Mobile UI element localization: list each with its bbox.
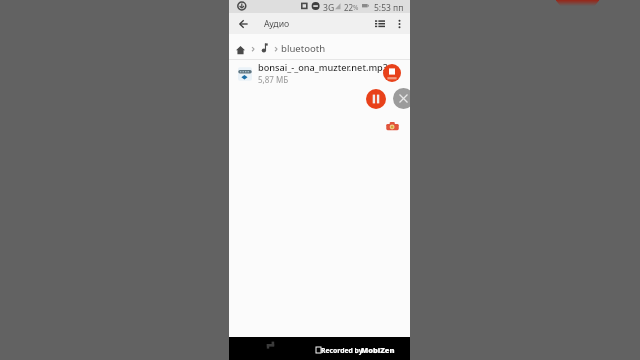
- button[interactable]: bluetooth: [281, 42, 326, 55]
- staticText: bonsai_-_ona_muzter.net.mp3: [258, 61, 389, 74]
- button[interactable]: Change view: [369, 13, 390, 34]
- staticText: 5:53 пп: [374, 2, 404, 14]
- button[interactable]: More options: [389, 13, 410, 34]
- staticText: bluetooth: [281, 42, 326, 55]
- staticText: 3G: [323, 2, 335, 14]
- button[interactable]: Close recorder: [393, 88, 414, 109]
- staticText: Аудио: [264, 18, 290, 30]
- button[interactable]: Stop recording: [383, 64, 401, 82]
- staticText: 5,87 МБ: [258, 74, 289, 85]
- button[interactable]: Audio folder: [257, 41, 271, 55]
- button[interactable]: Back: [233, 13, 254, 34]
- staticText: 22: [344, 2, 354, 13]
- button[interactable]: Home: [233, 42, 248, 57]
- staticText: %: [353, 3, 359, 12]
- button[interactable]: Take screenshot: [386, 120, 399, 133]
- staticText: Recorded by: [321, 346, 363, 355]
- button[interactable]: bonsai_-_ona_muzter.net.mp3: [229, 60, 410, 88]
- staticText: MobiZen: [361, 345, 395, 355]
- button[interactable]: Pause recording: [366, 89, 386, 109]
